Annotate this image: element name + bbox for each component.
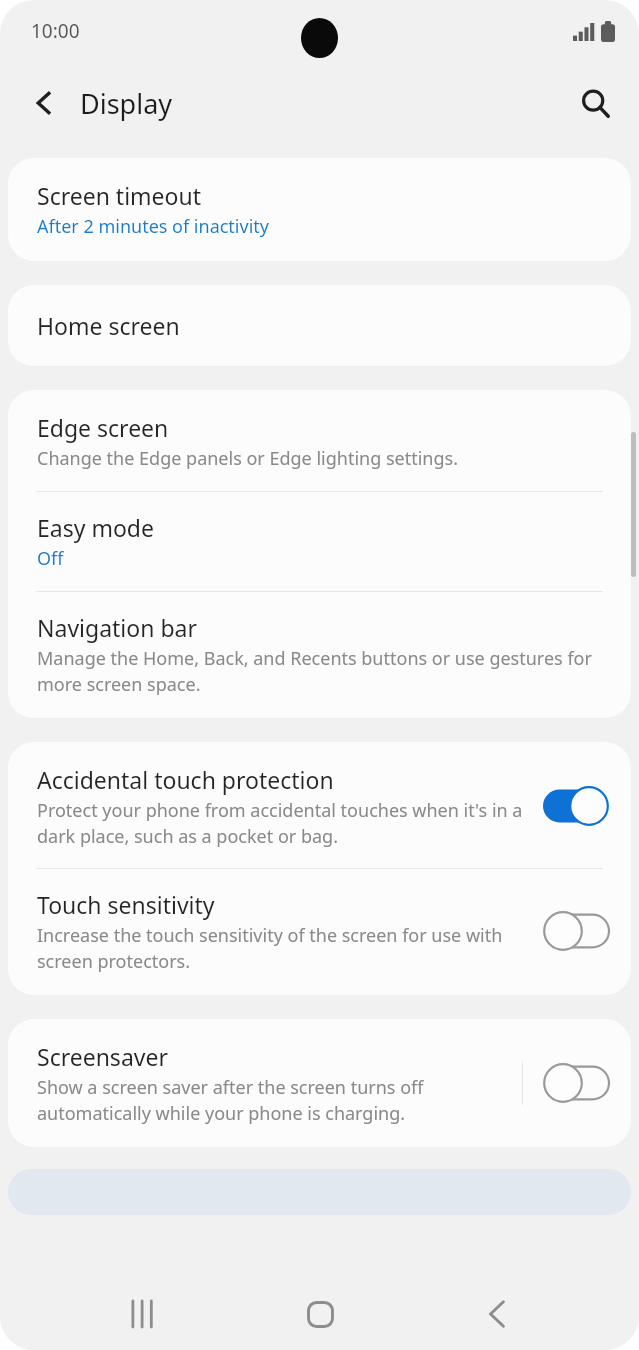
button[interactable]: Easy mode [8, 492, 631, 591]
button[interactable]: Home [284, 1278, 356, 1350]
button[interactable]: Toggle on [539, 782, 613, 830]
staticText: Navigation bar [37, 612, 197, 643]
staticText: Edge screen [37, 412, 169, 443]
staticText: Show a screen saver after the screen tur… [37, 1075, 522, 1125]
button[interactable]: Home screen [8, 285, 631, 366]
button[interactable]: Accidental touch protection [8, 742, 631, 868]
staticText: Home screen [37, 310, 180, 341]
button[interactable]: Screensaver [8, 1019, 631, 1147]
button[interactable]: Recents [106, 1278, 178, 1350]
staticText: Protect your phone from accidental touch… [37, 798, 539, 848]
staticText: 10:00 [31, 18, 80, 44]
button[interactable]: Search [567, 75, 623, 131]
staticText: Display [80, 85, 173, 122]
staticText: After 2 minutes of inactivity [37, 214, 269, 239]
staticText: Easy mode [37, 512, 154, 543]
staticText: Screensaver [37, 1041, 168, 1072]
staticText: Off [37, 546, 64, 571]
button[interactable]: Edge screen [8, 390, 631, 491]
staticText: Screen timeout [37, 180, 201, 211]
staticText: Touch sensitivity [37, 889, 215, 920]
button[interactable]: Navigation bar [8, 592, 631, 718]
button[interactable]: Touch sensitivity [8, 869, 631, 995]
staticText: Change the Edge panels or Edge lighting … [37, 446, 458, 471]
button[interactable]: Toggle off [539, 1059, 613, 1107]
staticText: Manage the Home, Back, and Recents butto… [37, 646, 613, 696]
staticText: Increase the touch sensitivity of the sc… [37, 923, 539, 973]
button[interactable]: Toggle off [539, 907, 613, 955]
button[interactable]: Back [461, 1278, 533, 1350]
button[interactable]: Screen timeout [8, 158, 631, 261]
button[interactable]: Back [18, 77, 70, 129]
staticText: Accidental touch protection [37, 764, 334, 795]
